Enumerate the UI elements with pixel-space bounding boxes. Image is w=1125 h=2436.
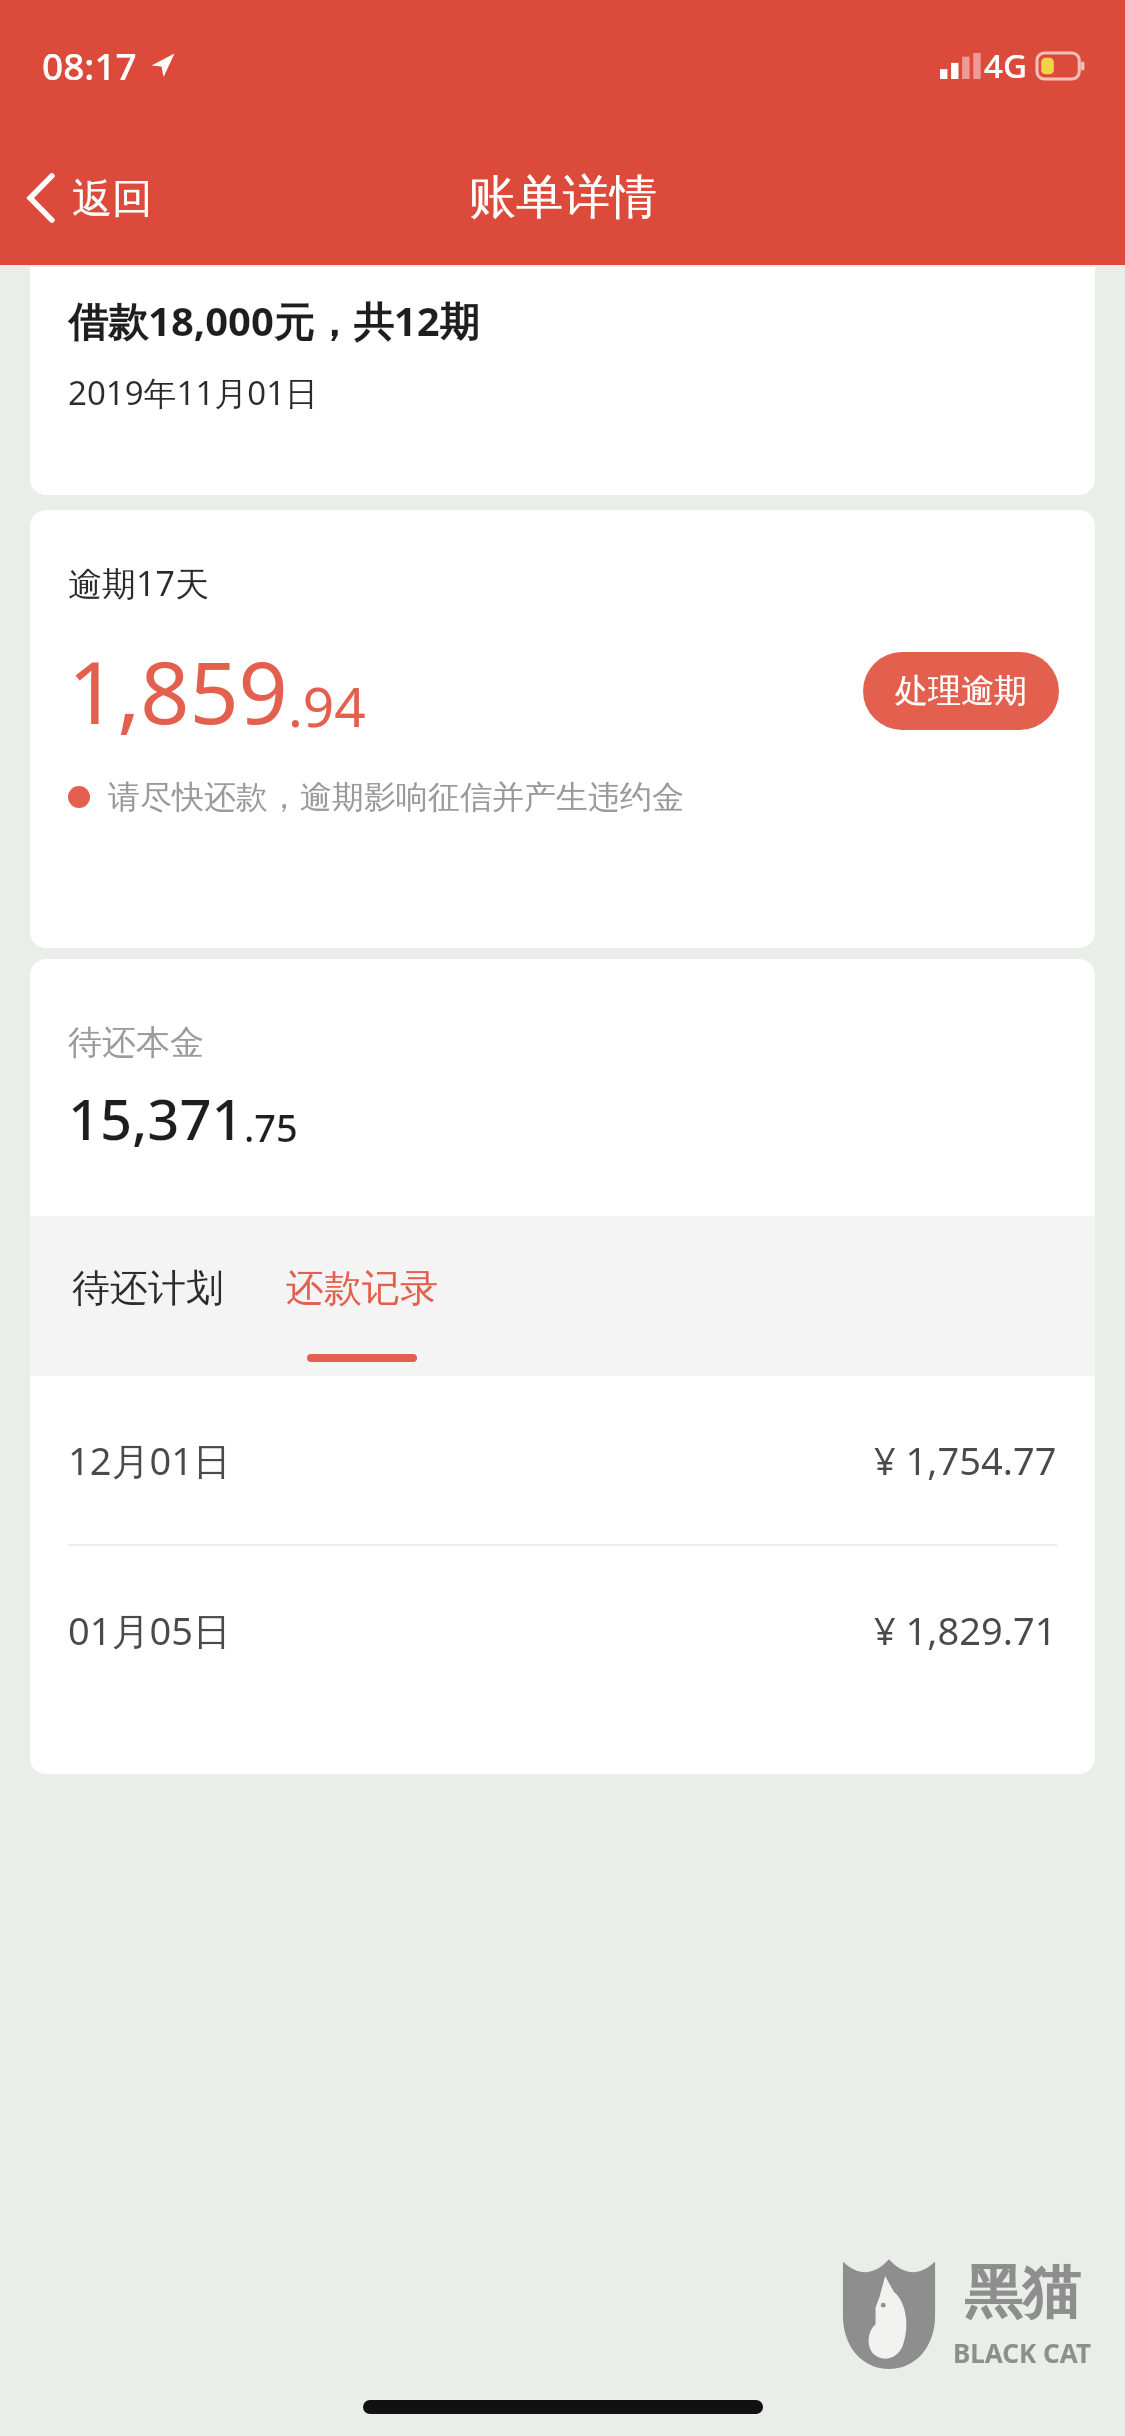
staticText: 2019年11月01日 (68, 370, 319, 415)
button[interactable]: 还款记录 (286, 1264, 438, 1362)
staticText: 处理逾期 (895, 670, 1027, 712)
staticText: 1,859 (68, 632, 288, 749)
staticText: 4G (984, 43, 1027, 88)
staticText: 借款18,000元，共12期 (68, 293, 480, 348)
staticText: BLACK CAT (953, 2335, 1091, 2370)
button[interactable]: 01月05日 (30, 1546, 1095, 1714)
staticText: 待还计划 (72, 1264, 224, 1312)
button[interactable]: 待还计划 (68, 1264, 228, 1312)
staticText: 黑猫 (964, 2256, 1080, 2329)
staticText: 账单详情 (469, 168, 657, 227)
staticText: ¥ 1,754.77 (874, 1434, 1057, 1486)
staticText: .94 (288, 668, 366, 743)
button[interactable]: 返回 (0, 159, 176, 237)
staticText: 逾期17天 (68, 560, 209, 606)
staticText: 返回 (72, 173, 152, 223)
staticText: 请尽快还款，逾期影响征信并产生违约金 (108, 777, 684, 817)
staticText: ¥ 1,829.71 (874, 1604, 1057, 1656)
staticText: 08:17 (42, 40, 137, 90)
button[interactable]: 12月01日 (30, 1376, 1095, 1544)
button[interactable]: 处理逾期 (863, 652, 1059, 730)
button[interactable]: 借款18,000元，共12期 (30, 267, 1095, 495)
staticText: 待还本金 (68, 1021, 204, 1064)
staticText: .75 (244, 1101, 298, 1153)
staticText: 15,371 (68, 1080, 244, 1156)
staticText: 01月05日 (68, 1604, 231, 1656)
staticText: 12月01日 (68, 1434, 231, 1486)
staticText: 还款记录 (286, 1264, 438, 1312)
